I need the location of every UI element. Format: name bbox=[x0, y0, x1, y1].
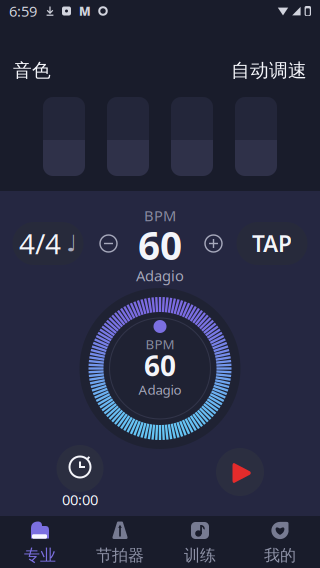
button[interactable]: Tempo dial bbox=[79, 288, 240, 449]
staticText: 训练 bbox=[184, 546, 216, 565]
button[interactable]: 节拍器 bbox=[80, 516, 160, 568]
button[interactable]: 专业 bbox=[0, 516, 80, 568]
button[interactable]: 训练 bbox=[160, 516, 240, 568]
button[interactable]: 自动调速 bbox=[227, 55, 311, 86]
staticText: 00:00 bbox=[62, 490, 98, 509]
staticText: 6:59 bbox=[9, 1, 37, 21]
button[interactable]: Timer bbox=[46, 442, 114, 509]
staticText: 我的 bbox=[264, 546, 296, 565]
staticText: 音色 bbox=[13, 59, 51, 82]
button[interactable]: TAP bbox=[236, 222, 307, 265]
button[interactable]: Beat 4 bbox=[235, 97, 277, 176]
button[interactable]: Beat 1 bbox=[43, 97, 85, 176]
staticText: Adagio bbox=[138, 381, 181, 398]
button[interactable]: 我的 bbox=[240, 516, 320, 568]
staticText: 60 bbox=[138, 219, 182, 271]
button[interactable]: 4/4 bbox=[12, 222, 83, 265]
staticText: BPM bbox=[144, 206, 176, 225]
staticText: 自动调速 bbox=[231, 59, 307, 82]
staticText: M bbox=[79, 3, 91, 19]
staticText: 专业 bbox=[24, 546, 56, 565]
button[interactable]: Increase tempo bbox=[198, 222, 228, 265]
staticText: 4/4 bbox=[19, 225, 61, 262]
staticText: 节拍器 bbox=[96, 546, 144, 565]
button[interactable]: Beat 2 bbox=[107, 97, 149, 176]
staticText: Adagio bbox=[136, 266, 184, 285]
button[interactable]: 音色 bbox=[9, 55, 55, 86]
button[interactable]: Play bbox=[206, 442, 274, 509]
staticText: ♩ bbox=[66, 231, 77, 256]
staticText: BPM bbox=[145, 335, 174, 353]
button[interactable]: Decrease tempo bbox=[93, 222, 123, 265]
button[interactable]: Beat 3 bbox=[171, 97, 213, 176]
staticText: 60 bbox=[144, 347, 176, 384]
staticText: TAP bbox=[252, 228, 292, 258]
